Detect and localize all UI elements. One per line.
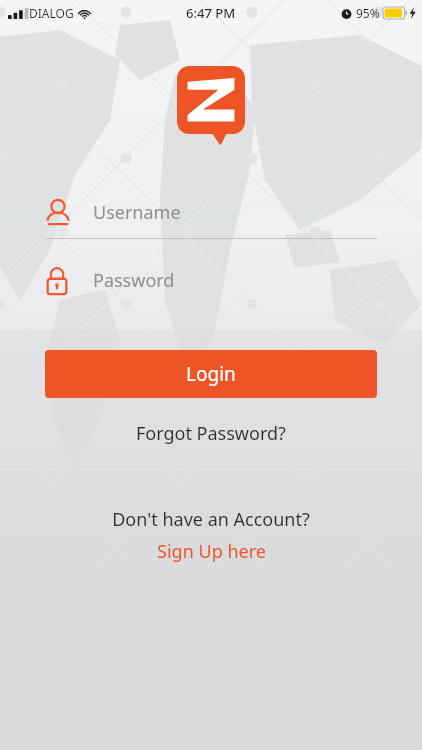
staticText: Username <box>93 200 181 225</box>
staticText: Login <box>186 361 236 387</box>
button[interactable]: Forgot Password? <box>122 416 300 451</box>
button[interactable]: Password <box>45 257 377 303</box>
staticText: 6:47 PM <box>186 4 236 22</box>
button[interactable]: Username <box>45 186 377 238</box>
staticText: Don't have an Account? <box>112 507 310 532</box>
button[interactable]: Sign Up here <box>143 536 280 567</box>
button[interactable]: Login <box>45 350 377 398</box>
staticText: Password <box>93 268 175 293</box>
staticText: 95% <box>356 5 380 21</box>
staticText: Sign Up here <box>157 539 266 564</box>
staticText: DIALOG <box>29 5 74 21</box>
staticText: Forgot Password? <box>136 421 286 446</box>
